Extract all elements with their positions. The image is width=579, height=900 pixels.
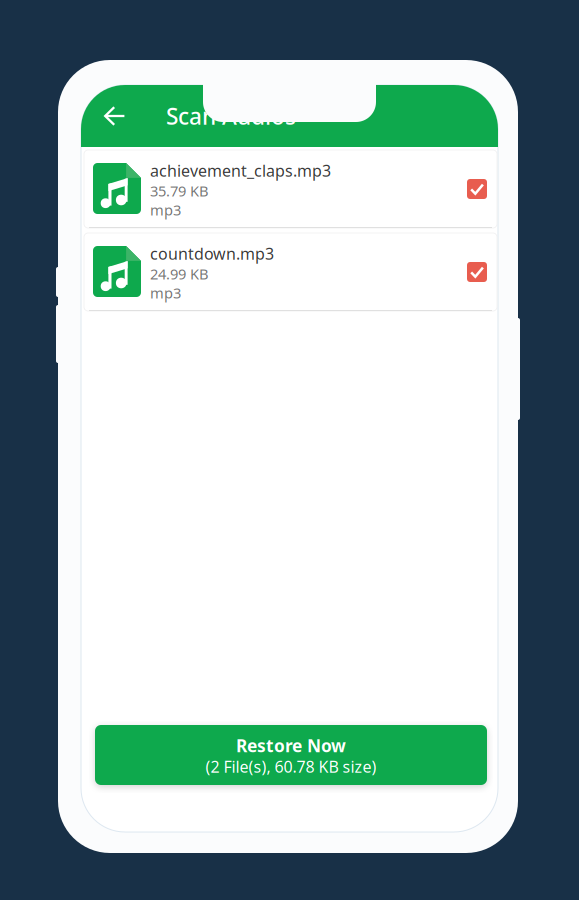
staticText: Restore Now: [236, 734, 346, 757]
staticText: countdown.mp3: [150, 243, 274, 264]
staticText: 24.99 KB: [150, 264, 209, 283]
staticText: mp3: [150, 200, 181, 219]
staticText: (2 File(s), 60.78 KB size): [205, 756, 376, 777]
staticText: mp3: [150, 283, 181, 302]
button[interactable]: Restore Now: [95, 725, 487, 785]
staticText: achievement_claps.mp3: [150, 160, 331, 181]
button[interactable]: countdown.mp3: [84, 233, 497, 311]
button[interactable]: achievement_claps.mp3: [84, 150, 497, 228]
staticText: Scan Audios: [166, 101, 296, 131]
staticText: 35.79 KB: [150, 181, 209, 200]
button[interactable]: Back: [93, 94, 137, 138]
